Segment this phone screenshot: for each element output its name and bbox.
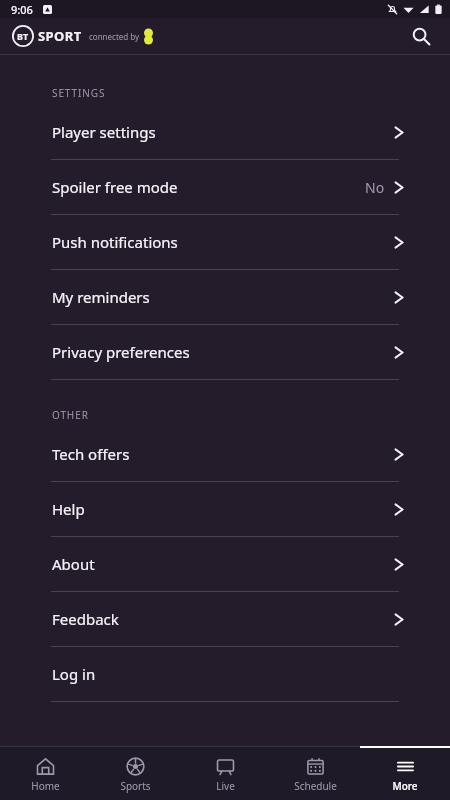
staticText: 9:06 <box>11 2 33 17</box>
staticText: Tech offers <box>52 444 394 464</box>
button[interactable]: Home <box>0 746 90 800</box>
staticText: About <box>52 554 394 574</box>
staticText: connected by <box>89 31 140 42</box>
button[interactable]: About <box>0 537 450 591</box>
button[interactable]: Schedule <box>270 746 360 800</box>
staticText: No <box>365 178 385 197</box>
button[interactable]: Spoiler free mode <box>0 160 450 214</box>
button[interactable]: Player settings <box>0 105 450 159</box>
staticText: Help <box>52 499 394 519</box>
button[interactable]: Log in <box>0 647 450 701</box>
staticText: SPORT <box>38 27 82 45</box>
button[interactable]: Sports <box>90 746 180 800</box>
button[interactable]: My reminders <box>0 270 450 324</box>
button[interactable]: Search <box>402 18 440 54</box>
staticText: Player settings <box>52 122 394 142</box>
button[interactable]: More <box>360 746 450 800</box>
staticText: More <box>392 779 418 793</box>
button[interactable]: Feedback <box>0 592 450 646</box>
button[interactable]: Help <box>0 482 450 536</box>
staticText: Spoiler free mode <box>52 177 365 197</box>
staticText: Sports <box>120 779 151 793</box>
staticText: Log in <box>52 664 404 684</box>
button[interactable]: Live <box>180 746 270 800</box>
staticText: OTHER <box>52 408 89 422</box>
staticText: Schedule <box>294 779 337 793</box>
staticText: Home <box>31 779 60 793</box>
staticText: Live <box>216 779 235 793</box>
staticText: Feedback <box>52 609 394 629</box>
staticText: My reminders <box>52 287 394 307</box>
staticText: BT <box>17 30 29 42</box>
button[interactable]: BT <box>12 25 153 47</box>
button[interactable]: Privacy preferences <box>0 325 450 379</box>
button[interactable]: Tech offers <box>0 427 450 481</box>
button[interactable]: Push notifications <box>0 215 450 269</box>
staticText: Privacy preferences <box>52 342 394 362</box>
staticText: SETTINGS <box>52 86 106 100</box>
staticText: Push notifications <box>52 232 394 252</box>
